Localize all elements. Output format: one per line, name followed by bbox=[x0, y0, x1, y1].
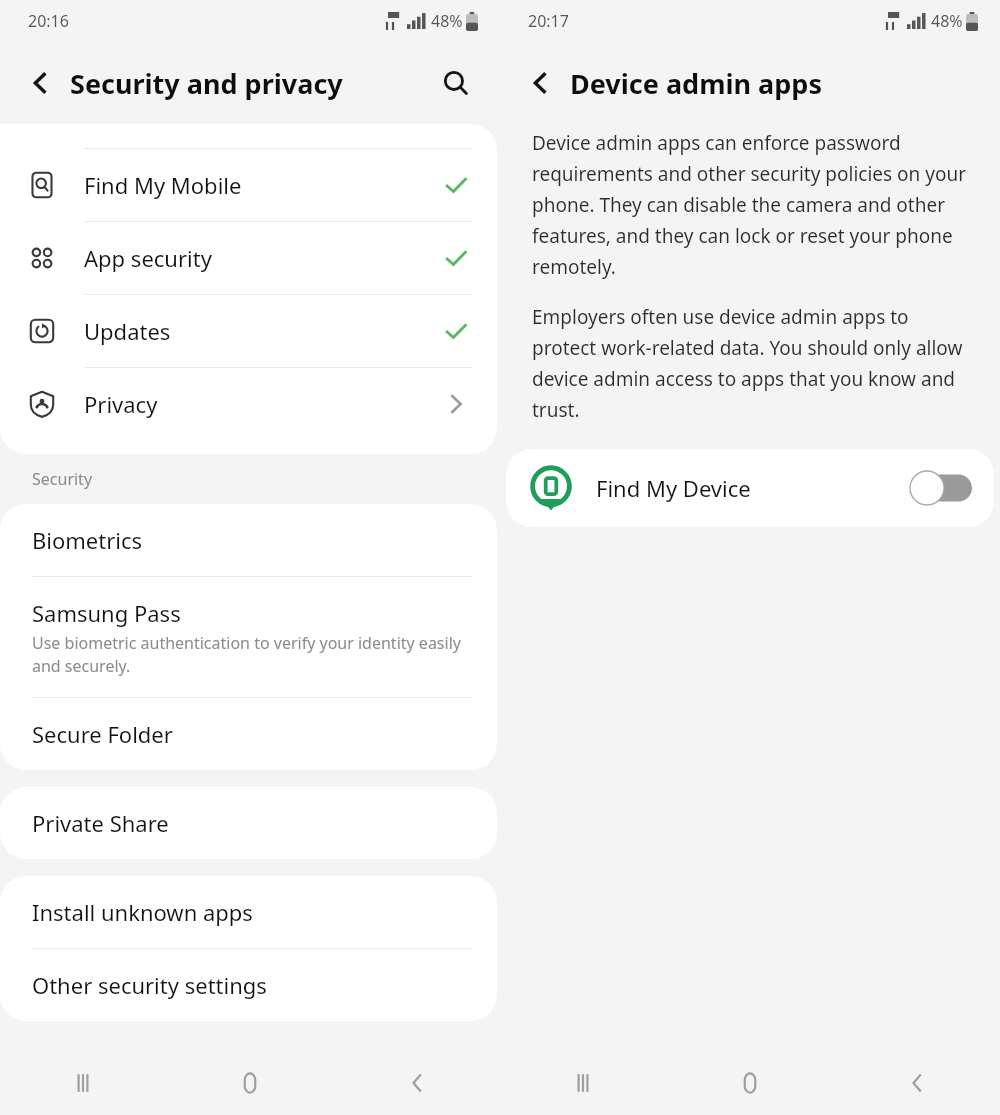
staticText: Use biometric authentication to verify y… bbox=[32, 632, 461, 677]
staticText: Other security settings bbox=[32, 970, 267, 1000]
button[interactable]: Samsung Pass bbox=[0, 577, 497, 697]
button[interactable]: Search bbox=[430, 57, 482, 109]
staticText: Employers often use device admin apps to… bbox=[532, 304, 974, 423]
button[interactable]: Recent apps bbox=[500, 1051, 666, 1115]
staticText: 48% bbox=[931, 10, 963, 32]
staticText: Private Share bbox=[32, 808, 169, 838]
button[interactable]: Find My Device bbox=[506, 449, 994, 527]
staticText: Device admin apps bbox=[570, 65, 822, 102]
staticText: App security bbox=[84, 243, 212, 273]
button[interactable]: Home bbox=[166, 1051, 333, 1115]
button[interactable]: Biometrics bbox=[0, 504, 497, 576]
staticText: Security bbox=[32, 468, 93, 490]
button[interactable]: Navigate up bbox=[16, 59, 64, 107]
button[interactable]: Private Share bbox=[0, 787, 497, 859]
staticText: Privacy bbox=[84, 389, 158, 419]
staticText: Install unknown apps bbox=[32, 897, 253, 927]
button[interactable]: Privacy bbox=[0, 368, 497, 440]
button[interactable]: Secure Folder bbox=[0, 698, 497, 770]
staticText: Find My Mobile bbox=[84, 170, 242, 200]
staticText: Secure Folder bbox=[32, 719, 173, 749]
staticText: Biometrics bbox=[32, 525, 143, 555]
button[interactable]: Home bbox=[666, 1051, 833, 1115]
button[interactable]: Other security settings bbox=[0, 949, 497, 1021]
staticText: Device admin apps can enforce password r… bbox=[532, 130, 974, 280]
button[interactable]: App security bbox=[0, 222, 497, 294]
button[interactable]: Navigate up bbox=[516, 59, 564, 107]
button[interactable]: Back bbox=[833, 1051, 1000, 1115]
staticText: Updates bbox=[84, 316, 171, 346]
staticText: Find My Device bbox=[596, 473, 751, 503]
staticText: Samsung Pass bbox=[32, 598, 181, 628]
staticText: Security and privacy bbox=[70, 65, 343, 102]
button[interactable]: Back bbox=[333, 1051, 500, 1115]
button[interactable]: Find My Device toggle, off bbox=[910, 471, 972, 505]
button[interactable]: Find My Mobile bbox=[0, 149, 497, 221]
button[interactable]: Updates bbox=[0, 295, 497, 367]
staticText: 20:16 bbox=[28, 10, 69, 32]
staticText: 20:17 bbox=[528, 10, 569, 32]
button[interactable]: Install unknown apps bbox=[0, 876, 497, 948]
button[interactable]: Recent apps bbox=[0, 1051, 166, 1115]
staticText: 48% bbox=[431, 10, 463, 32]
